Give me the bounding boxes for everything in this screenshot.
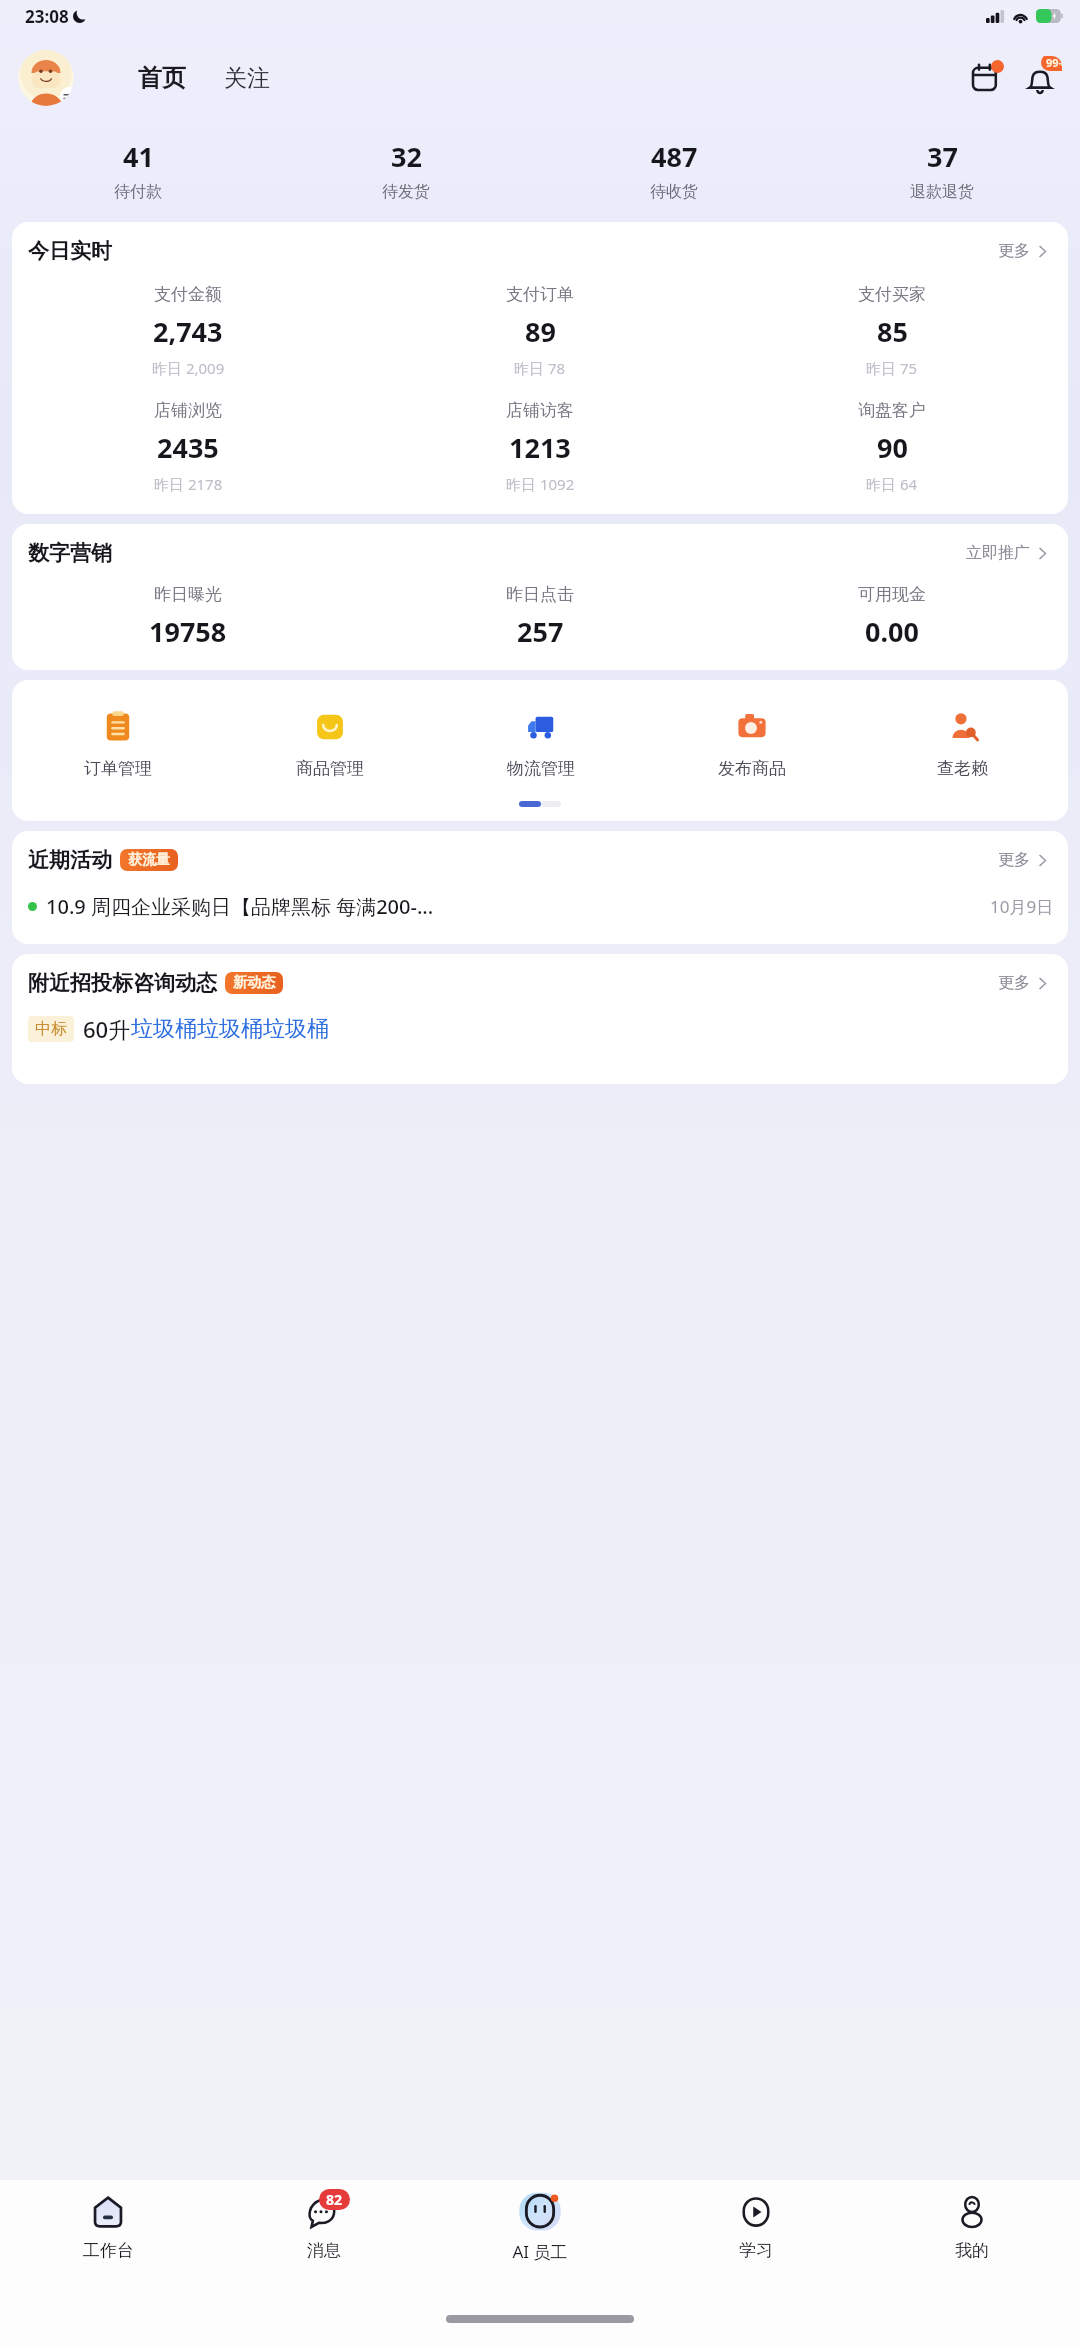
button[interactable]: 发布商品 bbox=[646, 706, 857, 781]
button[interactable]: 昨日曝光 bbox=[12, 582, 364, 652]
staticText: 37 bbox=[927, 138, 958, 175]
button[interactable]: Calendar bbox=[964, 57, 1006, 99]
staticText: 昨日 78 bbox=[514, 358, 566, 378]
button[interactable]: 41 bbox=[4, 134, 272, 206]
staticText: 询盘客户 bbox=[858, 400, 926, 421]
button[interactable]: 中标 bbox=[12, 1014, 1068, 1044]
staticText: 首页 bbox=[138, 63, 186, 93]
button[interactable]: 订单管理 bbox=[12, 706, 224, 781]
button[interactable]: 支付买家 bbox=[716, 282, 1068, 380]
staticText: 支付金额 bbox=[154, 284, 222, 305]
staticText: 新动态 bbox=[233, 974, 275, 992]
staticText: 99+ bbox=[1046, 56, 1062, 70]
staticText: 90 bbox=[877, 429, 908, 466]
button[interactable]: 支付金额 bbox=[12, 282, 364, 380]
staticText: 退款退货 bbox=[910, 182, 974, 202]
staticText: 待付款 bbox=[114, 182, 162, 202]
staticText: 10月9日 bbox=[990, 895, 1054, 918]
staticText: 我的 bbox=[955, 2240, 989, 2261]
staticText: 89 bbox=[525, 313, 556, 350]
staticText: 60升 bbox=[83, 1014, 131, 1044]
staticText: 今日实时 bbox=[28, 238, 112, 264]
button[interactable]: 首页 bbox=[132, 59, 192, 97]
staticText: 昨日 75 bbox=[866, 358, 918, 378]
staticText: 附近招投标咨询动态 bbox=[28, 970, 217, 996]
button[interactable]: 立即推广 bbox=[962, 540, 1054, 566]
button[interactable]: 商品管理 bbox=[224, 706, 435, 781]
staticText: 257 bbox=[517, 613, 564, 650]
button[interactable]: 关注 bbox=[218, 60, 276, 97]
staticText: 2435 bbox=[157, 429, 219, 466]
button[interactable]: 82 bbox=[216, 2180, 432, 2290]
button[interactable]: 物流管理 bbox=[435, 706, 646, 781]
staticText: 数字营销 bbox=[28, 540, 112, 566]
staticText: 昨日点击 bbox=[506, 584, 574, 605]
staticText: 昨日 2,009 bbox=[152, 358, 225, 378]
button[interactable]: 32 bbox=[272, 134, 540, 206]
staticText: 消息 bbox=[307, 2240, 341, 2261]
button[interactable]: 更多 bbox=[994, 847, 1054, 873]
staticText: 2,743 bbox=[153, 313, 223, 350]
staticText: 待收货 bbox=[650, 182, 698, 202]
staticText: 支付买家 bbox=[858, 284, 926, 305]
button[interactable]: 店铺访客 bbox=[364, 398, 716, 496]
button[interactable]: 支付订单 bbox=[364, 282, 716, 380]
staticText: 物流管理 bbox=[507, 758, 575, 779]
button[interactable]: 工作台 bbox=[0, 2180, 216, 2290]
staticText: 垃圾桶垃圾桶垃圾桶 bbox=[131, 1015, 329, 1043]
button[interactable]: 店铺浏览 bbox=[12, 398, 364, 496]
staticText: 可用现金 bbox=[858, 584, 926, 605]
button[interactable]: 昨日点击 bbox=[364, 582, 716, 652]
staticText: 0.00 bbox=[865, 613, 919, 650]
button[interactable]: 更多 bbox=[994, 970, 1054, 996]
staticText: AI 员工 bbox=[512, 2240, 568, 2263]
staticText: 学习 bbox=[739, 2240, 773, 2261]
staticText: 487 bbox=[651, 138, 698, 175]
staticText: 41 bbox=[123, 138, 154, 175]
button[interactable] bbox=[18, 50, 74, 106]
staticText: 85 bbox=[877, 313, 908, 350]
staticText: 支付订单 bbox=[506, 284, 574, 305]
staticText: 更多 bbox=[998, 850, 1030, 870]
staticText: 关注 bbox=[224, 64, 270, 93]
button[interactable]: 我的 bbox=[864, 2180, 1080, 2290]
staticText: 查老赖 bbox=[937, 758, 988, 779]
staticText: 近期活动 bbox=[28, 847, 112, 873]
button[interactable]: 询盘客户 bbox=[716, 398, 1068, 496]
staticText: 32 bbox=[391, 138, 422, 175]
staticText: 获流量 bbox=[128, 851, 170, 869]
staticText: 工作台 bbox=[83, 2240, 134, 2261]
button[interactable]: AI 员工 bbox=[432, 2180, 648, 2290]
staticText: 1213 bbox=[509, 429, 571, 466]
button[interactable]: 更多 bbox=[994, 238, 1054, 264]
button[interactable]: 487 bbox=[540, 134, 808, 206]
staticText: 中标 bbox=[35, 1019, 67, 1039]
staticText: 立即推广 bbox=[966, 543, 1030, 563]
staticText: 更多 bbox=[998, 973, 1030, 993]
staticText: 昨日曝光 bbox=[154, 584, 222, 605]
staticText: 10.9 周四企业采购日【品牌黑标 每满200-... bbox=[46, 893, 434, 920]
staticText: 23:08 bbox=[25, 5, 69, 28]
button[interactable]: 查老赖 bbox=[857, 706, 1068, 781]
staticText: 商品管理 bbox=[296, 758, 364, 779]
staticText: 昨日 64 bbox=[866, 474, 918, 494]
staticText: 店铺浏览 bbox=[154, 400, 222, 421]
staticText: 店铺访客 bbox=[506, 400, 574, 421]
staticText: 订单管理 bbox=[84, 758, 152, 779]
staticText: 待发货 bbox=[382, 182, 430, 202]
staticText: 昨日 2178 bbox=[154, 474, 223, 494]
staticText: 19758 bbox=[149, 613, 227, 650]
staticText: 82 bbox=[326, 2190, 343, 2209]
button[interactable]: 可用现金 bbox=[716, 582, 1068, 652]
button[interactable]: Notifications bbox=[1018, 56, 1062, 100]
staticText: 昨日 1092 bbox=[506, 474, 575, 494]
button[interactable]: 10.9 周四企业采购日【品牌黑标 每满200-... bbox=[12, 893, 1068, 920]
staticText: 更多 bbox=[998, 241, 1030, 261]
button[interactable]: 37 bbox=[808, 134, 1076, 206]
button[interactable]: 学习 bbox=[648, 2180, 864, 2290]
staticText: 发布商品 bbox=[718, 758, 786, 779]
